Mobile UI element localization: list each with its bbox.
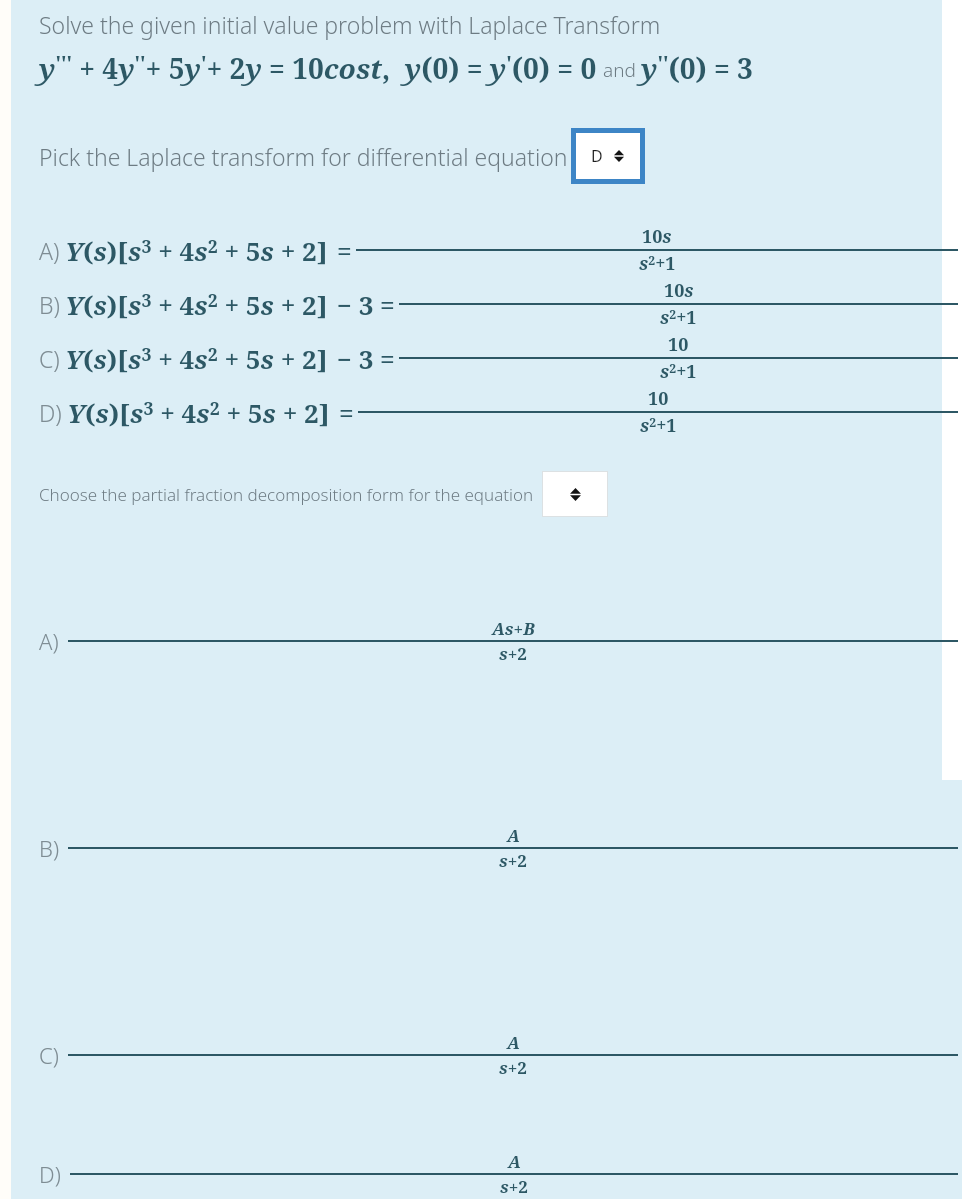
staticText: Y(s)[s3 + 4s2 + 5s + 2]: [65, 341, 328, 376]
staticText: y''(0) = 3: [641, 49, 753, 87]
staticText: 10s: [642, 224, 672, 249]
staticText: Choose the partial fraction decompositio…: [39, 483, 534, 506]
button[interactable]: Pick the Laplace transform, selected D: [576, 133, 640, 179]
staticText: Y(s)[s3 + 4s2 + 5s + 2]: [65, 233, 328, 268]
staticText: − 3 =: [337, 341, 395, 376]
button[interactable]: Choose the partial fraction decompositio…: [542, 471, 608, 517]
staticText: − 3 =: [337, 287, 395, 322]
staticText: A: [507, 824, 520, 847]
staticText: A: [508, 1150, 521, 1173]
staticText: Solve the given initial value problem wi…: [39, 9, 661, 40]
staticText: B): [39, 289, 60, 320]
staticText: y''' + 4y''+ 5y'+ 2y = 10cost, y(0) = y'…: [39, 49, 597, 87]
staticText: Y(s)[s3 + 4s2 + 5s + 2]: [65, 287, 328, 322]
staticText: s+2: [499, 1056, 527, 1079]
staticText: D: [591, 145, 603, 167]
staticText: C): [39, 343, 60, 374]
staticText: C): [39, 1040, 59, 1070]
staticText: =: [337, 233, 352, 268]
staticText: 10s: [664, 278, 694, 303]
staticText: s2+1: [660, 359, 697, 384]
staticText: s2+1: [660, 305, 697, 330]
staticText: s2+1: [640, 413, 677, 438]
staticText: A): [39, 235, 60, 266]
staticText: and: [603, 57, 636, 83]
staticText: A): [39, 626, 59, 656]
staticText: B): [39, 833, 59, 863]
staticText: D): [39, 397, 62, 428]
staticText: s+2: [499, 849, 527, 872]
staticText: s2+1: [639, 251, 676, 276]
staticText: 10: [668, 332, 689, 357]
staticText: =: [339, 395, 354, 430]
staticText: Y(s)[s3 + 4s2 + 5s + 2]: [67, 395, 330, 430]
staticText: D): [39, 1159, 61, 1189]
staticText: s+2: [499, 642, 527, 665]
staticText: Pick the Laplace transform for different…: [39, 141, 568, 172]
staticText: s+2: [500, 1175, 528, 1198]
staticText: As+B: [492, 617, 535, 640]
staticText: A: [507, 1031, 520, 1054]
staticText: 10: [648, 386, 669, 411]
